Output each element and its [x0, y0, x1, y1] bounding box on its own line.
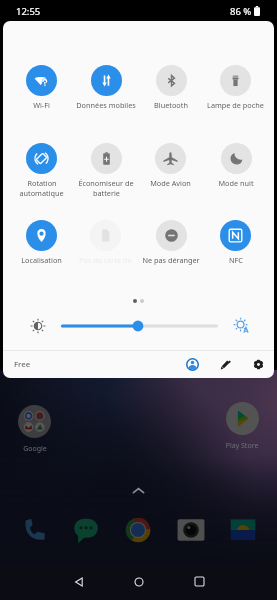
staticText: Bluetooth: [154, 100, 188, 110]
button[interactable]: Mode nuit: [203, 143, 268, 188]
button[interactable]: Back: [58, 563, 100, 600]
button[interactable]: Phone: [20, 516, 48, 544]
button[interactable]: Edit: [214, 353, 237, 376]
staticText: automatique: [19, 188, 64, 198]
button[interactable]: Recents: [178, 563, 220, 600]
button[interactable]: Camera: [177, 516, 205, 544]
button[interactable]: NFC: [203, 220, 268, 265]
staticText: Free: [14, 359, 31, 370]
button[interactable]: Rotation: [9, 143, 73, 198]
staticText: 12:55: [16, 5, 41, 18]
button[interactable]: Home: [118, 563, 160, 600]
button[interactable]: Bluetooth: [138, 65, 203, 110]
button[interactable]: Google folder: [18, 405, 51, 438]
button[interactable]: Settings: [247, 353, 270, 376]
staticText: Mode Avion: [150, 178, 191, 188]
button[interactable]: Ne pas déranger: [138, 220, 203, 265]
button[interactable]: Messages: [72, 516, 100, 544]
staticText: Ne pas déranger: [142, 255, 200, 265]
staticText: NFC: [229, 255, 243, 265]
button[interactable]: Mode Avion: [138, 143, 203, 188]
button[interactable]: Pas de carte de don: [73, 220, 138, 265]
staticText: Mode nuit: [218, 178, 254, 188]
button[interactable]: Photos: [229, 516, 257, 544]
staticText: batterie: [93, 188, 120, 198]
staticText: Wi-Fi: [33, 100, 50, 110]
staticText: Localisation: [21, 255, 62, 265]
button[interactable]: User account: [181, 353, 204, 376]
button[interactable]: Données mobiles: [73, 65, 138, 110]
staticText: 86 %: [230, 5, 252, 18]
button[interactable]: Wi-Fi: [9, 65, 73, 110]
button[interactable]: Lampe de poche: [203, 65, 268, 110]
button[interactable]: Économiseur de: [73, 143, 138, 198]
staticText: Play Store: [219, 441, 265, 451]
staticText: Données mobiles: [76, 100, 136, 110]
button[interactable]: Localisation: [9, 220, 73, 265]
staticText: Pas de carte de don: [73, 255, 138, 265]
staticText: Rotation: [27, 178, 57, 188]
staticText: Lampe de poche: [207, 100, 264, 110]
staticText: Économiseur de: [78, 178, 134, 188]
button[interactable]: Chrome: [124, 516, 152, 544]
button[interactable]: Play Store: [226, 402, 259, 435]
staticText: Google: [12, 444, 58, 454]
